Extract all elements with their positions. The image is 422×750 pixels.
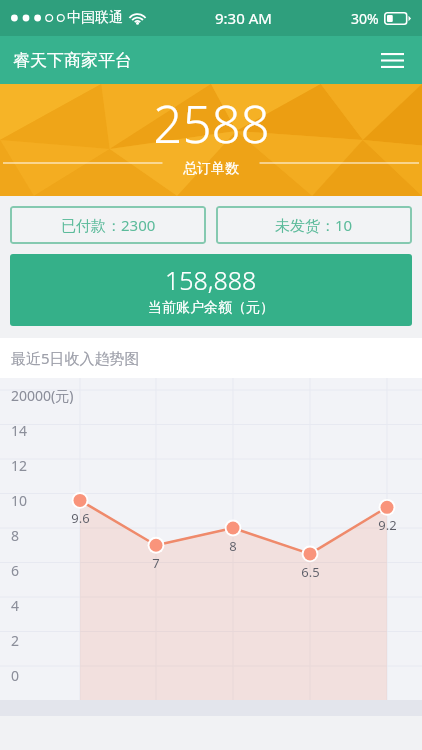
staticText: 8	[11, 526, 20, 545]
button[interactable]: Menu	[373, 41, 411, 79]
staticText: 7	[152, 554, 160, 572]
staticText: 睿天下商家平台	[13, 50, 132, 71]
button[interactable]: 158,888	[10, 254, 412, 326]
staticText: 6	[11, 561, 20, 580]
staticText: 总订单数	[183, 160, 239, 178]
staticText: 9.6	[71, 509, 90, 527]
staticText: 最近5日收入趋势图	[11, 348, 140, 368]
staticText: 已付款：2300	[61, 215, 156, 235]
staticText: 当前账户余额（元）	[148, 299, 274, 317]
staticText: 6.5	[301, 563, 320, 581]
staticText: 2588	[153, 88, 270, 157]
staticText: 中国联通	[67, 9, 123, 27]
staticText: 0	[11, 666, 20, 685]
staticText: 9.2	[378, 516, 397, 534]
button[interactable]: 已付款：2300	[10, 206, 206, 244]
staticText: 14	[11, 421, 28, 440]
staticText: 20000(元)	[11, 386, 74, 405]
staticText: 8	[229, 537, 237, 555]
staticText: 2	[11, 631, 20, 650]
staticText: 12	[11, 456, 28, 475]
staticText: 未发货：10	[275, 215, 353, 235]
staticText: 4	[11, 596, 20, 615]
staticText: 9:30 AM	[215, 8, 272, 28]
staticText: 30%	[351, 9, 379, 28]
staticText: 158,888	[165, 263, 257, 297]
button[interactable]: 未发货：10	[216, 206, 412, 244]
staticText: 10	[11, 491, 28, 510]
